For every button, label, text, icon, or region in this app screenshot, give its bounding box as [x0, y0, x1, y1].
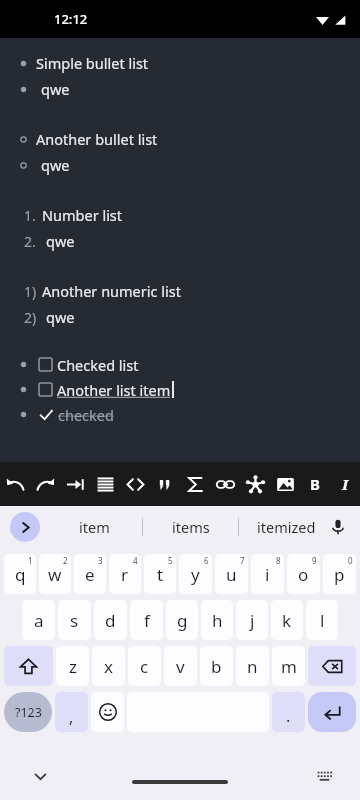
button[interactable]: g [166, 600, 198, 640]
staticText: q [15, 563, 26, 586]
staticText: qwe [41, 155, 70, 175]
button[interactable]: Math [180, 462, 210, 506]
button[interactable]: Image [270, 462, 300, 506]
staticText: 1) [24, 282, 37, 301]
button[interactable]: y [179, 554, 212, 594]
button[interactable]: m [272, 646, 305, 686]
button[interactable]: Simple bullet list [0, 50, 360, 76]
button[interactable]: t [144, 554, 176, 594]
staticText: i [265, 563, 270, 586]
button[interactable]: Italic [330, 462, 360, 506]
button[interactable]: j [236, 600, 268, 640]
button[interactable]: n [236, 646, 269, 686]
button[interactable]: e [74, 554, 106, 594]
button[interactable]: qwe [0, 152, 360, 178]
staticText: Simple bullet list [36, 53, 149, 73]
staticText: items [172, 517, 210, 537]
button[interactable]: Backspace [308, 646, 356, 686]
button[interactable]: qwe [0, 76, 360, 102]
button[interactable]: r [109, 554, 141, 594]
button[interactable]: Quote [150, 462, 180, 506]
button[interactable]: 2) [0, 304, 360, 330]
button[interactable]: Code [120, 462, 150, 506]
staticText: r [121, 563, 129, 586]
button[interactable]: d [94, 600, 127, 640]
button[interactable]: i [251, 554, 284, 594]
button[interactable]: Graph [240, 462, 270, 506]
button[interactable]: x [92, 646, 125, 686]
button[interactable]: ?123 [4, 692, 52, 732]
staticText: p [334, 563, 345, 586]
button[interactable]: . [272, 692, 305, 732]
button[interactable]: item [46, 506, 142, 548]
other: Unchecked [39, 383, 52, 396]
staticText: d [105, 609, 116, 632]
button[interactable]: Redo [30, 462, 60, 506]
button[interactable]: z [56, 646, 89, 686]
button[interactable]: Enter [308, 692, 356, 732]
button[interactable]: p [323, 554, 356, 594]
button[interactable]: Link [210, 462, 240, 506]
button[interactable]: Expand suggestions [10, 512, 40, 542]
staticText: 9 [312, 555, 317, 566]
staticText: Another numeric list [42, 281, 181, 301]
button[interactable]: l [306, 600, 338, 640]
button[interactable]: Hide keyboard [26, 762, 54, 790]
button[interactable]: o [287, 554, 320, 594]
button[interactable]: 1) [0, 278, 360, 304]
button[interactable]: Change keyboard [310, 762, 338, 790]
button[interactable]: itemized [239, 506, 334, 548]
other: Checked [39, 408, 53, 422]
button[interactable]: , [55, 692, 88, 732]
staticText: B [310, 474, 320, 494]
staticText: 12:12 [54, 10, 88, 28]
button[interactable]: h [201, 600, 233, 640]
staticText: e [85, 563, 95, 586]
staticText: k [282, 609, 292, 632]
staticText: t [157, 563, 164, 586]
staticText: 1 [28, 555, 33, 566]
button[interactable]: a [22, 600, 55, 640]
button[interactable]: Checked [0, 402, 360, 427]
button[interactable]: b [200, 646, 233, 686]
button[interactable]: Unchecked [0, 352, 360, 377]
button[interactable]: k [271, 600, 303, 640]
staticText: 1. [24, 206, 36, 225]
staticText: z [69, 655, 77, 678]
staticText: Another bullet list [36, 129, 158, 149]
staticText: f [144, 609, 150, 632]
staticText: s [70, 609, 79, 632]
button[interactable]: Voice input [324, 513, 352, 541]
staticText: qwe [41, 79, 70, 99]
staticText: , [69, 706, 74, 728]
staticText: 8 [276, 555, 281, 566]
button[interactable]: q [4, 554, 36, 594]
staticText: 2. [24, 232, 36, 251]
staticText: 3 [98, 555, 103, 566]
button[interactable]: s [58, 600, 91, 640]
button[interactable]: Indent [60, 462, 90, 506]
button[interactable]: 2. [0, 228, 360, 254]
button[interactable]: c [128, 646, 161, 686]
button[interactable]: Shift [4, 646, 53, 686]
staticText: 7 [240, 555, 245, 566]
button[interactable]: Unchecked [0, 377, 360, 402]
staticText: Checked list [57, 355, 139, 375]
button[interactable]: Undo [0, 462, 30, 506]
staticText: ?123 [15, 704, 42, 721]
button[interactable]: Bold [300, 462, 330, 506]
button[interactable]: Emoji [91, 692, 124, 732]
staticText: item [79, 517, 110, 537]
button[interactable]: v [164, 646, 197, 686]
button[interactable]: items [143, 506, 238, 548]
button[interactable]: f [130, 600, 163, 640]
staticText: 0 [348, 555, 353, 566]
button[interactable]: List [90, 462, 120, 506]
button[interactable]: Another bullet list [0, 126, 360, 152]
other: Unchecked [39, 358, 52, 371]
button[interactable]: 1. [0, 202, 360, 228]
button[interactable]: u [215, 554, 248, 594]
button[interactable]: w [39, 554, 71, 594]
